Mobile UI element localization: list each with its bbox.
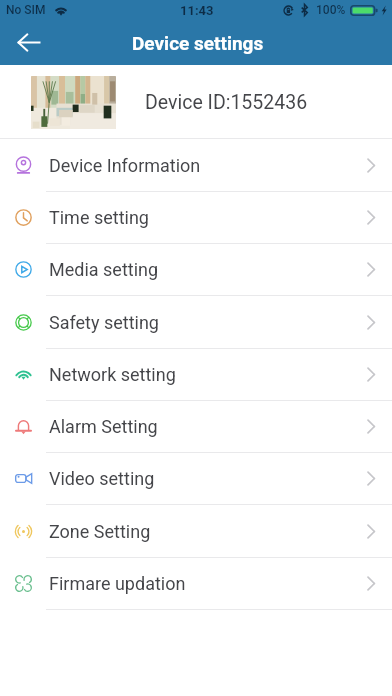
button[interactable]: Safety setting bbox=[0, 296, 392, 349]
staticText: Device Information bbox=[49, 155, 201, 176]
staticText: Time setting bbox=[49, 207, 149, 228]
button[interactable]: Back bbox=[0, 20, 48, 65]
staticText: No SIM bbox=[6, 3, 46, 17]
button[interactable]: Alarm Setting bbox=[0, 401, 392, 453]
staticText: Firmare updation bbox=[49, 573, 186, 594]
staticText: Safety setting bbox=[49, 312, 159, 333]
button[interactable]: Video setting bbox=[0, 453, 392, 505]
staticText: Media setting bbox=[49, 259, 159, 280]
button[interactable]: Zone Setting bbox=[0, 505, 392, 558]
button[interactable]: Device ID:1552436 bbox=[0, 65, 392, 138]
staticText: Network setting bbox=[49, 364, 176, 385]
staticText: Zone Setting bbox=[49, 521, 151, 542]
staticText: Alarm Setting bbox=[49, 416, 158, 437]
staticText: 100% bbox=[316, 3, 346, 17]
button[interactable]: Network setting bbox=[0, 349, 392, 401]
button[interactable]: Time setting bbox=[0, 192, 392, 244]
staticText: Device ID:1552436 bbox=[145, 91, 308, 114]
button[interactable]: Device Information bbox=[0, 139, 392, 192]
button[interactable]: Media setting bbox=[0, 244, 392, 296]
staticText: 11:43 bbox=[180, 3, 214, 18]
staticText: Video setting bbox=[49, 468, 155, 489]
staticText: Device settings bbox=[132, 32, 264, 54]
button[interactable]: Firmare updation bbox=[0, 558, 392, 610]
